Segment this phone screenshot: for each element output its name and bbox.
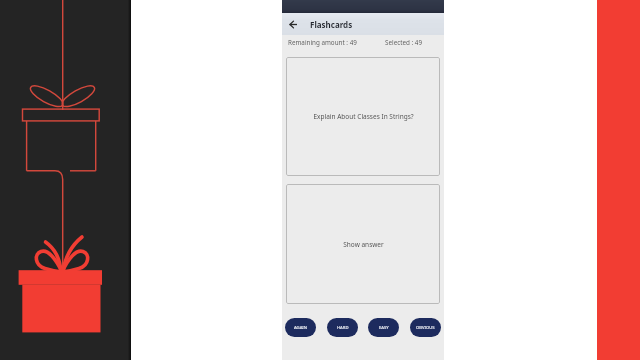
staticText: HARD [337,325,349,331]
button[interactable]: Explain About Classes In Strings? [286,57,440,176]
staticText: Flashcards [310,19,353,30]
button[interactable]: Show answer [286,184,440,304]
button[interactable]: AGAIN [285,318,316,337]
staticText: Explain About Classes In Strings? [313,112,414,121]
staticText: OBVIOUS [416,325,435,331]
staticText: EASY [379,325,389,331]
button[interactable]: Back [286,17,300,31]
button[interactable]: HARD [327,318,358,337]
staticText: Selected : 49 [385,38,423,47]
staticText: Remaining amount : 49 [288,38,357,47]
button[interactable]: OBVIOUS [410,318,441,337]
button[interactable]: EASY [368,318,399,337]
staticText: Show answer [343,240,384,249]
staticText: AGAIN [294,325,307,331]
